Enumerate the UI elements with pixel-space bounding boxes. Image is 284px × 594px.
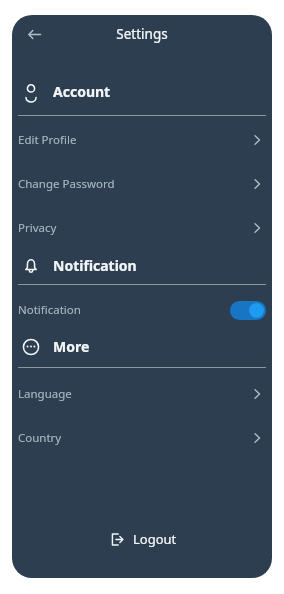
staticText: More xyxy=(53,337,90,356)
button[interactable]: Language xyxy=(12,384,272,404)
button[interactable]: Notification xyxy=(12,297,272,323)
button[interactable]: More xyxy=(12,337,272,356)
button[interactable]: Change Password xyxy=(12,174,272,194)
staticText: Account xyxy=(53,82,111,101)
staticText: Privacy xyxy=(18,220,57,236)
button[interactable]: Edit Profile xyxy=(12,130,272,150)
staticText: Notification xyxy=(53,256,137,275)
button[interactable]: Logout xyxy=(12,520,272,558)
button[interactable]: Country xyxy=(12,428,272,448)
button[interactable]: Notification toggle xyxy=(230,301,266,320)
button[interactable]: Account xyxy=(12,82,272,101)
staticText: Settings xyxy=(116,25,168,43)
staticText: Country xyxy=(18,430,62,446)
button[interactable]: Back xyxy=(18,18,50,50)
staticText: Notification xyxy=(18,302,81,318)
staticText: Edit Profile xyxy=(18,132,77,148)
staticText: Logout xyxy=(133,530,177,548)
staticText: Change Password xyxy=(18,176,115,192)
staticText: Language xyxy=(18,386,72,402)
button[interactable]: Notification xyxy=(12,256,272,275)
button[interactable]: Privacy xyxy=(12,218,272,238)
